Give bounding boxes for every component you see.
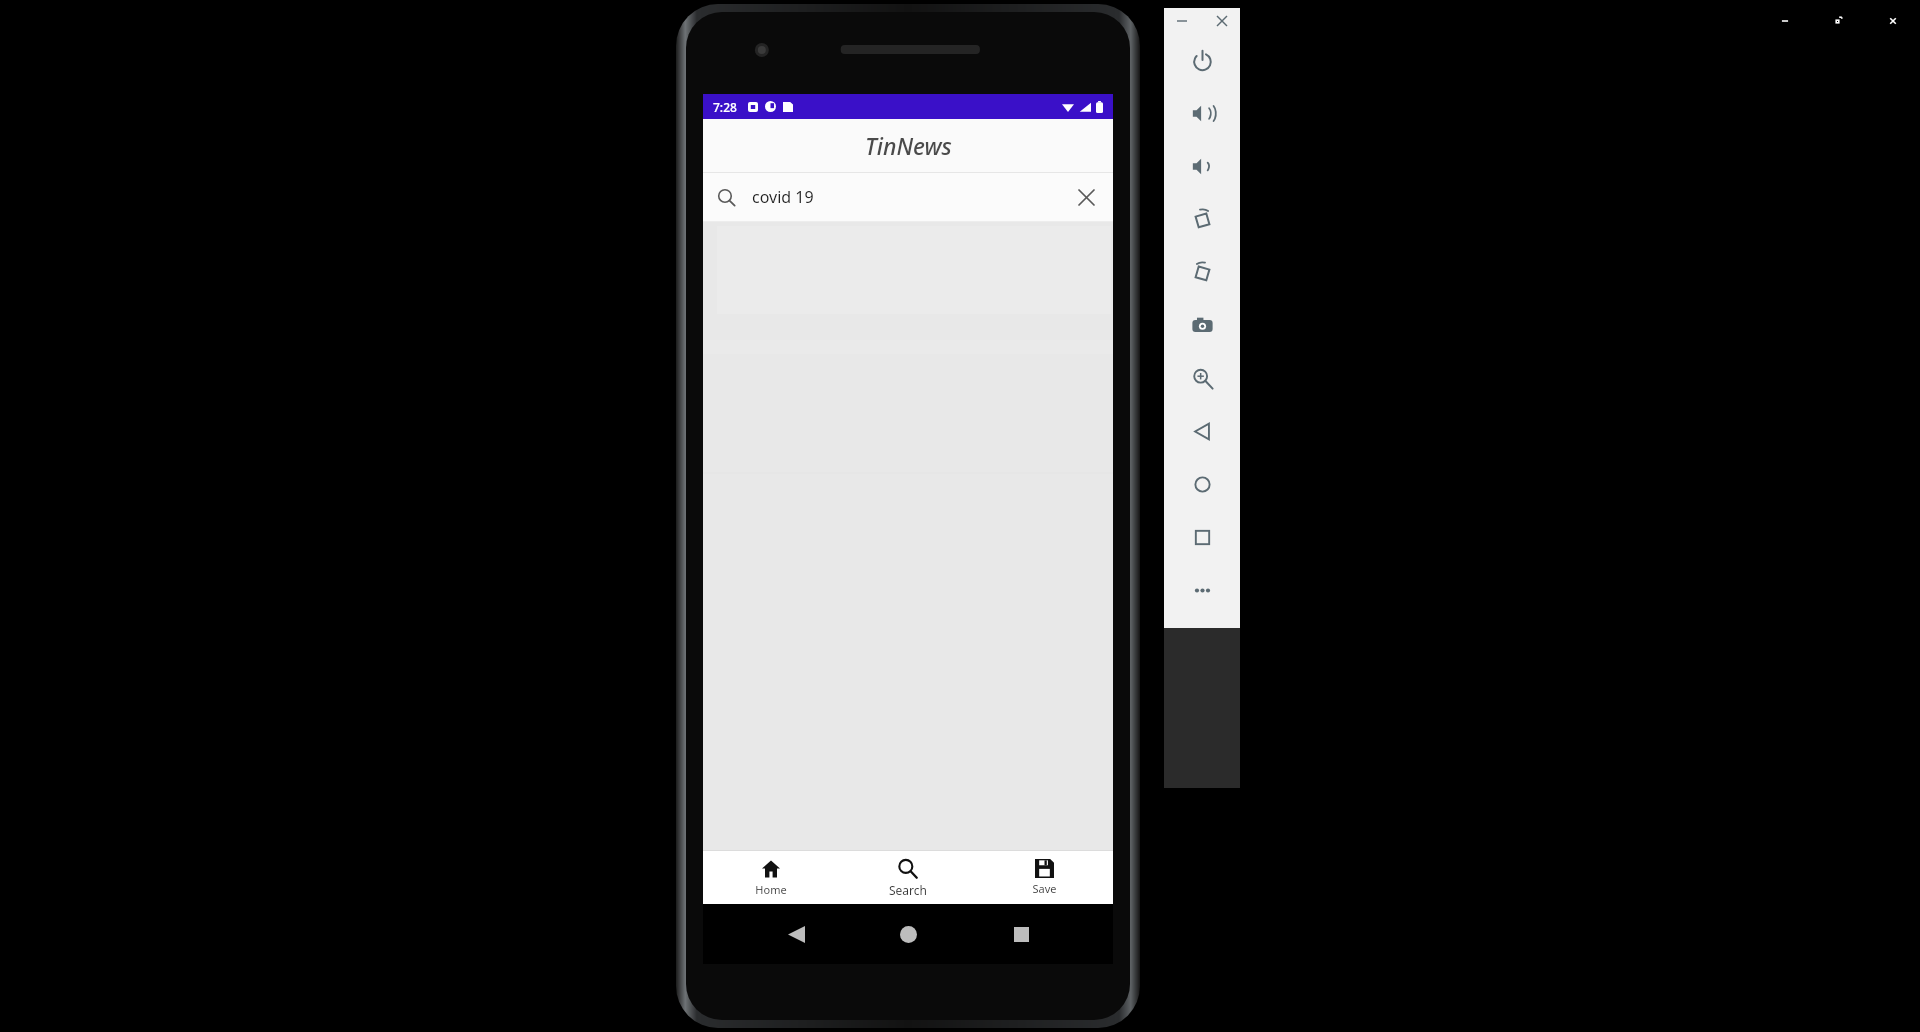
- button[interactable]: Save: [976, 851, 1113, 904]
- button[interactable]: Close: [1880, 8, 1906, 34]
- button[interactable]: Search: [839, 851, 976, 904]
- staticText: TinNews: [865, 130, 952, 161]
- button[interactable]: Search: [703, 173, 1113, 221]
- other: Search: [717, 188, 736, 207]
- button[interactable]: More: [1164, 564, 1240, 617]
- button[interactable]: Rotate right: [1164, 246, 1240, 299]
- button[interactable]: Minimize: [1772, 8, 1798, 34]
- staticText: Home: [755, 882, 787, 897]
- staticText: Search: [889, 882, 927, 898]
- button[interactable]: Overview: [1164, 511, 1240, 564]
- button[interactable]: Volume up: [1164, 87, 1240, 140]
- button[interactable]: Back: [776, 914, 816, 954]
- staticText: covid 19: [752, 186, 814, 208]
- button[interactable]: Recent apps: [1001, 914, 1041, 954]
- button[interactable]: Maximize: [1826, 8, 1852, 34]
- button[interactable]: Rotate left: [1164, 193, 1240, 246]
- button[interactable]: Close emulator: [1212, 11, 1232, 31]
- button[interactable]: Back: [1164, 405, 1240, 458]
- button[interactable]: Clear search: [1073, 184, 1099, 210]
- staticText: 7:28: [713, 99, 737, 115]
- button[interactable]: Take screenshot: [1164, 299, 1240, 352]
- button[interactable]: Power: [1164, 34, 1240, 87]
- button[interactable]: Zoom: [1164, 352, 1240, 405]
- button[interactable]: Home: [703, 851, 839, 904]
- button[interactable]: Volume down: [1164, 140, 1240, 193]
- button[interactable]: Home: [1164, 458, 1240, 511]
- staticText: Save: [1032, 881, 1057, 896]
- button[interactable]: Minimize emulator: [1172, 11, 1192, 31]
- button[interactable]: Home: [888, 914, 928, 954]
